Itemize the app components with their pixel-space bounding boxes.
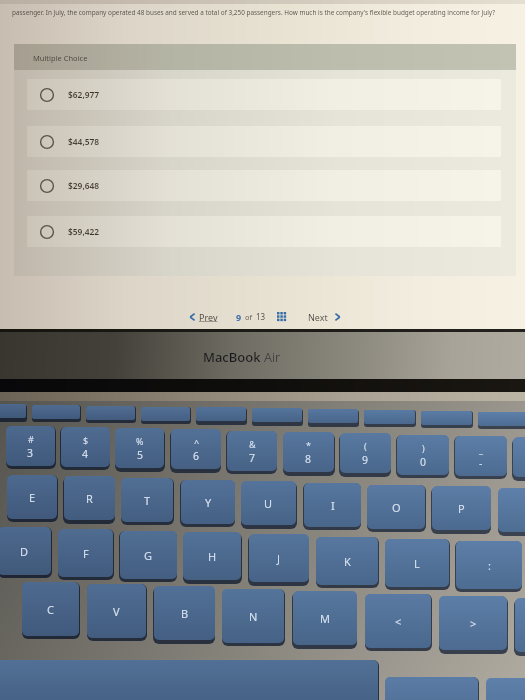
button[interactable]: U (241, 481, 296, 525)
button[interactable]: K (316, 537, 378, 585)
staticText: 13 (256, 311, 266, 322)
staticText: 3 (27, 446, 34, 460)
staticText: Prev (199, 311, 218, 323)
button[interactable]: Y (181, 480, 235, 524)
staticText: O (392, 500, 401, 515)
button[interactable]: O (367, 485, 425, 529)
staticText: * (306, 439, 311, 451)
staticText: % (136, 435, 144, 447)
staticText: - (479, 456, 483, 470)
staticText: 7 (249, 451, 256, 465)
button[interactable]: G (120, 531, 177, 579)
staticText: K (344, 554, 351, 569)
staticText: U (264, 496, 273, 511)
button[interactable]: All questions (277, 312, 287, 322)
button[interactable]: J (249, 534, 309, 582)
staticText: ( (364, 440, 367, 452)
staticText: R (86, 491, 93, 506)
button[interactable]: V (87, 584, 146, 638)
button[interactable]: H (183, 532, 241, 580)
staticText: $59,422 (68, 226, 100, 237)
button[interactable]: C (22, 582, 79, 636)
button[interactable]: $44,578 (27, 126, 501, 157)
staticText: N (249, 609, 258, 624)
button[interactable]: M (293, 591, 357, 645)
staticText: J (277, 551, 281, 566)
button[interactable]: $29,648 (27, 170, 501, 201)
button[interactable] (86, 406, 135, 420)
button[interactable]: ( (340, 433, 391, 473)
staticText: 8 (305, 452, 312, 466)
button[interactable]: $59,422 (27, 216, 501, 247)
staticText: & (249, 438, 256, 450)
button[interactable]: % (115, 428, 164, 468)
staticText: MacBook (203, 348, 264, 366)
button[interactable]: D (0, 527, 51, 575)
button[interactable]: T (121, 478, 173, 522)
staticText: D (20, 544, 29, 559)
button[interactable]: Next (308, 311, 343, 323)
button[interactable] (364, 410, 415, 424)
staticText: P (458, 501, 465, 516)
button[interactable] (252, 408, 302, 422)
button[interactable] (486, 678, 525, 700)
staticText: > (470, 616, 477, 631)
staticText: V (113, 604, 120, 619)
staticText: C (47, 602, 54, 617)
staticText: $ (83, 434, 89, 446)
button[interactable]: : (456, 541, 522, 589)
button[interactable]: ⌘ (385, 677, 478, 700)
other: Previous (187, 312, 197, 322)
button[interactable]: B (154, 586, 215, 640)
staticText: ) (422, 442, 425, 454)
staticText: : (488, 558, 491, 573)
button[interactable]: _ (455, 436, 507, 476)
button[interactable] (141, 407, 190, 421)
button[interactable]: ) (397, 435, 449, 475)
staticText: $44,578 (68, 136, 100, 147)
staticText: E (29, 490, 36, 505)
button[interactable]: N (222, 589, 284, 643)
button[interactable]: > (439, 596, 507, 650)
staticText: 6 (193, 449, 200, 463)
button[interactable]: R (64, 476, 115, 520)
staticText: $29,648 (68, 180, 100, 191)
staticText: H (208, 549, 217, 564)
staticText: 5 (137, 448, 144, 462)
button[interactable] (478, 412, 525, 426)
staticText: of (245, 312, 253, 322)
button[interactable]: F (58, 529, 113, 577)
button[interactable]: # (6, 426, 55, 466)
button[interactable]: I (304, 483, 361, 527)
staticText: $62,977 (68, 89, 100, 100)
staticText: 9 (236, 311, 242, 323)
button[interactable] (513, 437, 525, 477)
button[interactable]: ^ (171, 429, 221, 469)
button[interactable]: Previous (187, 311, 218, 323)
staticText: passenger. In July, the company operated… (12, 8, 512, 17)
button[interactable]: $62,977 (27, 79, 501, 110)
button[interactable]: & (227, 431, 277, 471)
button[interactable] (0, 660, 378, 700)
other: Next (333, 312, 343, 322)
button[interactable] (515, 598, 525, 652)
staticText: M (320, 611, 330, 626)
button[interactable] (421, 411, 472, 425)
button[interactable]: P (432, 486, 491, 530)
button[interactable] (32, 405, 80, 419)
button[interactable]: * (283, 432, 334, 472)
staticText: Air (264, 348, 281, 366)
button[interactable]: E (7, 475, 57, 519)
button[interactable]: < (365, 594, 431, 648)
button[interactable] (196, 407, 246, 421)
staticText: L (414, 556, 420, 571)
button[interactable]: L (385, 539, 449, 587)
staticText: Next (308, 311, 328, 323)
staticText: 4 (82, 447, 89, 461)
staticText: < (395, 614, 402, 629)
button[interactable] (498, 488, 525, 532)
staticText: B (181, 606, 189, 621)
button[interactable]: $ (61, 427, 110, 467)
button[interactable] (0, 404, 26, 418)
button[interactable] (308, 409, 358, 423)
